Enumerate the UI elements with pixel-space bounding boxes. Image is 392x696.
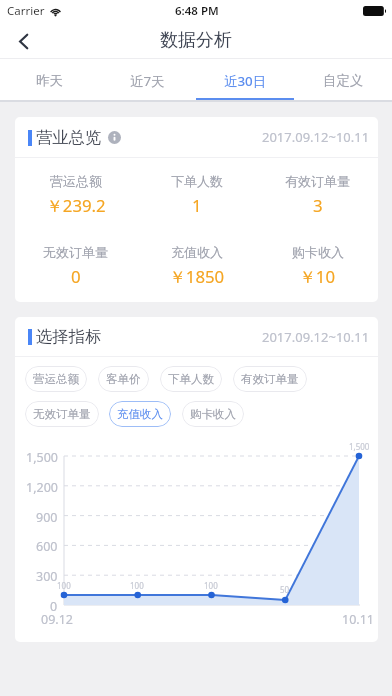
staticText: 10.11 [342, 611, 374, 628]
staticText: 近7天 [130, 72, 165, 90]
staticText: 0 [71, 265, 81, 288]
button[interactable]: 有效订单量 [233, 366, 307, 392]
staticText: 营运总额 [50, 173, 102, 189]
staticText: 下单人数 [171, 173, 223, 189]
staticText: 充值收入 [171, 244, 223, 260]
staticText: 1 [192, 194, 202, 217]
staticText: 近30日 [224, 72, 267, 90]
staticText: 1,200 [26, 479, 58, 496]
staticText: ￥10 [299, 265, 336, 288]
button[interactable]: 近7天 [98, 59, 196, 100]
staticText: 100 [130, 580, 144, 591]
staticText: 50 [280, 584, 290, 595]
staticText: 2017.09.12~10.11 [262, 128, 370, 146]
staticText: 选择指标 [36, 326, 102, 347]
button[interactable]: 充值收入 [109, 401, 171, 427]
button[interactable]: 无效订单量 [25, 401, 99, 427]
button[interactable]: 自定义 [294, 59, 392, 100]
staticText: 客单价 [106, 372, 141, 386]
staticText: 充值收入 [117, 407, 163, 421]
staticText: 营业总览 [36, 127, 102, 148]
staticText: 购卡收入 [190, 407, 236, 421]
button[interactable]: 客单价 [98, 366, 149, 392]
staticText: 100 [57, 580, 71, 591]
staticText: ￥239.2 [46, 194, 106, 217]
staticText: 有效订单量 [241, 372, 299, 386]
staticText: 数据分析 [160, 29, 232, 52]
staticText: 1,500 [349, 441, 370, 452]
button[interactable]: 下单人数 [160, 366, 222, 392]
staticText: 昨天 [36, 72, 63, 89]
staticText: 购卡收入 [292, 244, 344, 260]
staticText: ￥1850 [169, 265, 225, 288]
staticText: 下单人数 [168, 372, 214, 386]
button[interactable]: 营运总额 [25, 366, 87, 392]
staticText: 900 [36, 509, 58, 526]
staticText: 300 [36, 568, 58, 585]
staticText: 无效订单量 [43, 244, 108, 260]
staticText: 1,500 [26, 449, 58, 466]
staticText: 自定义 [323, 72, 364, 89]
staticText: 无效订单量 [33, 407, 91, 421]
staticText: 有效订单量 [285, 173, 350, 189]
staticText: 100 [204, 580, 218, 591]
staticText: 6:48 PM [175, 3, 219, 19]
staticText: 0 [50, 598, 58, 615]
button[interactable]: 近30日 [196, 59, 294, 100]
staticText: Carrier [7, 3, 45, 19]
button[interactable]: 昨天 [0, 59, 98, 100]
button[interactable]: Back [6, 24, 40, 58]
staticText: 3 [313, 194, 323, 217]
button[interactable]: 购卡收入 [182, 401, 244, 427]
staticText: 600 [36, 538, 58, 555]
staticText: 09.12 [41, 611, 73, 628]
staticText: 2017.09.12~10.11 [262, 328, 370, 346]
staticText: 营运总额 [33, 372, 79, 386]
